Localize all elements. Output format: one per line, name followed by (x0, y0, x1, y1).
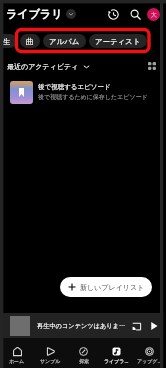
staticText: 後で視聴するために保存したエピソード (38, 93, 148, 101)
button[interactable]: ▶ 再生 (0, 34, 17, 48)
staticText: ホーム (9, 358, 25, 364)
button[interactable]: 探索 (67, 338, 100, 364)
button[interactable]: Account (147, 8, 160, 21)
button[interactable]: Play (147, 319, 161, 333)
button[interactable]: 後で視聴するエピソード (0, 78, 166, 106)
staticText: ライブラ… (104, 358, 129, 365)
staticText: ▶ 再生 (0, 36, 11, 46)
button[interactable]: サンプル (34, 338, 67, 364)
staticText: 曲 (26, 37, 34, 46)
staticText: サンプル (40, 358, 61, 364)
button[interactable]: ライブラ… (100, 338, 133, 365)
staticText: アップグ… (137, 358, 162, 365)
button[interactable]: 曲 (20, 34, 40, 48)
staticText: アーティスト (95, 37, 141, 46)
button[interactable]: ホーム (0, 338, 34, 364)
staticText: 探索 (79, 358, 89, 364)
button[interactable]: 再生中のコンテンツはありません (0, 313, 166, 338)
staticText: 最近のアクティビティ (7, 62, 79, 71)
staticText: 大 (151, 11, 157, 19)
button[interactable]: アーティスト (89, 34, 147, 48)
button[interactable]: アルバム (43, 34, 86, 48)
button[interactable]: Cast (129, 319, 143, 333)
staticText: 再生中のコンテンツはありません (37, 322, 127, 330)
button[interactable]: アップグ… (133, 338, 166, 365)
button[interactable]: Search (126, 5, 144, 23)
button[interactable]: Expand (66, 9, 76, 19)
staticText: 新しいプレイリスト (80, 283, 145, 292)
staticText: 後で視聴するエピソード (38, 83, 111, 91)
staticText: アルバム (49, 37, 80, 46)
button[interactable]: 新しいプレイリスト (60, 277, 152, 297)
staticText: ライブラリ (6, 7, 63, 21)
button[interactable]: History (104, 5, 122, 23)
button[interactable]: 最近のアクティビティ (7, 62, 90, 71)
button[interactable]: Grid view (145, 59, 159, 73)
